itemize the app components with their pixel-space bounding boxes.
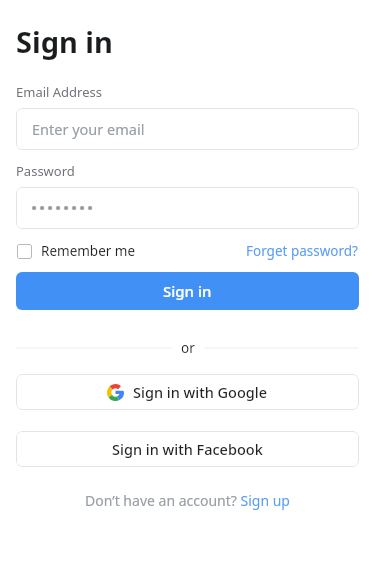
staticText: Password <box>16 162 75 180</box>
staticText: Sign in <box>163 281 212 301</box>
button[interactable]: Don’t have an account? Sign up <box>81 489 294 512</box>
staticText: Sign in with Facebook <box>112 439 263 459</box>
button[interactable] <box>16 187 359 229</box>
staticText: Sign in <box>16 22 113 61</box>
staticText: Email Address <box>16 83 102 101</box>
staticText: Enter your email <box>32 119 145 139</box>
staticText: Remember me <box>41 242 136 260</box>
button[interactable]: Sign in <box>16 272 359 310</box>
button[interactable]: Remember me <box>16 239 137 263</box>
staticText: Don’t have an account? Sign up <box>85 491 290 510</box>
button[interactable]: Google logo <box>16 374 359 410</box>
other: Google logo <box>107 384 124 401</box>
button[interactable]: Sign in with Facebook <box>16 431 359 467</box>
staticText: Forget password? <box>246 242 358 260</box>
button[interactable]: Enter your email <box>16 108 359 150</box>
button[interactable]: Forget password? <box>245 239 359 263</box>
staticText: or <box>181 339 195 357</box>
staticText: Sign in with Google <box>133 382 268 402</box>
